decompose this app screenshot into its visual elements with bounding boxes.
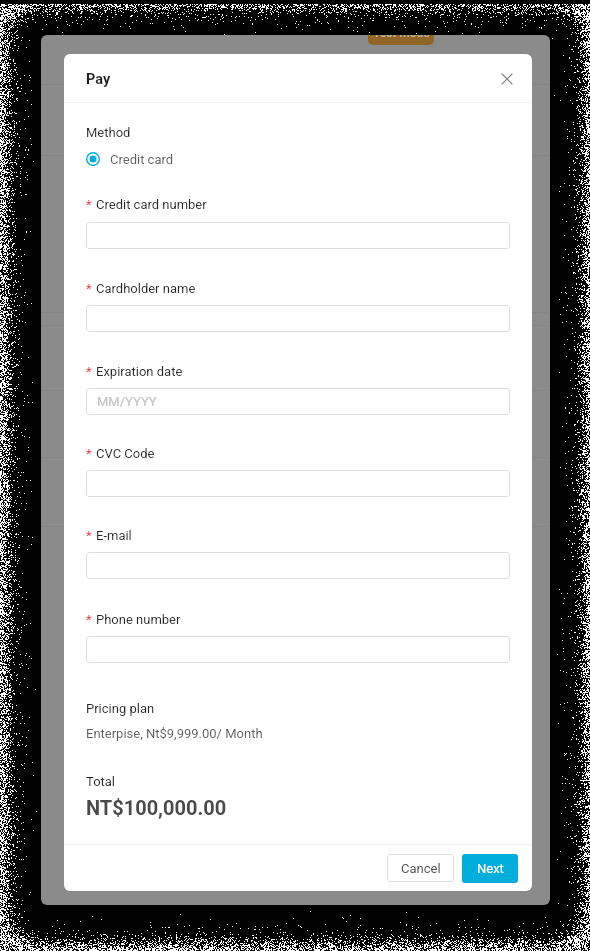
staticText: Expiration date <box>96 364 183 379</box>
staticText: Next <box>477 861 504 876</box>
button[interactable] <box>86 470 510 497</box>
staticText: Credit card number <box>96 197 207 212</box>
staticText: Test mode <box>373 35 430 40</box>
staticText: Cancel <box>401 861 441 876</box>
staticText: Enterpise, Nt$9,999.00/ Month <box>86 726 263 741</box>
staticText: Pricing plan <box>86 701 155 716</box>
staticText: NT$100,000.00 <box>86 796 227 819</box>
staticText: Cardholder name <box>96 281 196 296</box>
staticText: * <box>86 446 92 461</box>
staticText: Method <box>86 125 131 140</box>
button[interactable] <box>86 552 510 579</box>
staticText: * <box>86 528 92 543</box>
staticText: MM/YYYY <box>97 394 157 409</box>
staticText: * <box>86 364 92 379</box>
button[interactable]: Next <box>462 854 518 883</box>
staticText: Total <box>86 774 116 789</box>
staticText: Credit card <box>110 152 174 167</box>
button[interactable]: Close <box>494 66 520 92</box>
button[interactable] <box>86 636 510 663</box>
button[interactable]: Cancel <box>387 854 454 882</box>
button[interactable] <box>86 222 510 249</box>
button[interactable] <box>86 305 510 332</box>
staticText: * <box>86 197 92 212</box>
staticText: Phone number <box>96 612 181 627</box>
button[interactable]: MM/YYYY <box>86 388 510 415</box>
staticText: Pay <box>86 71 111 88</box>
button[interactable]: Credit card <box>86 149 174 169</box>
staticText: E-mail <box>96 528 132 543</box>
staticText: * <box>86 612 92 627</box>
staticText: CVC Code <box>96 446 155 461</box>
staticText: * <box>86 281 92 296</box>
